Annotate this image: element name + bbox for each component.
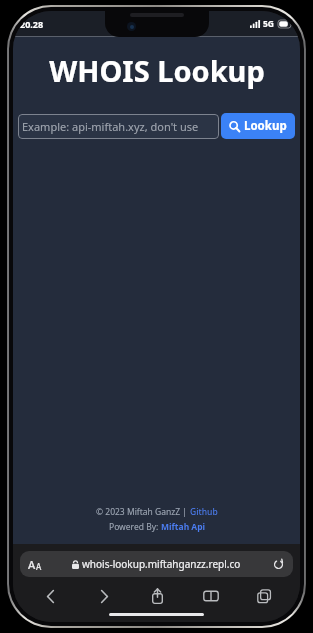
staticText: 5G [263,18,275,30]
button[interactable]: Lookup [221,113,295,139]
button[interactable]: Bookmarks [184,584,237,608]
button[interactable]: Page settings [20,551,293,577]
staticText: Lookup [244,118,287,134]
button[interactable]: Share [131,584,184,608]
button[interactable]: Tabs [237,584,290,608]
staticText: © 2023 Miftah GanzZ | [96,506,190,518]
staticText: A [28,557,36,572]
other: Page settings [28,557,42,572]
staticText: whois-lookup.miftahganzz.repl.co [82,557,241,571]
button[interactable]: Example: api-miftah.xyz, don't use [18,114,219,139]
button[interactable]: Miftah Api [161,521,206,533]
button[interactable]: Reload [272,558,285,571]
button[interactable]: Github [190,506,218,518]
staticText: Powered By: [109,521,161,533]
staticText: A [36,561,42,572]
button[interactable]: Forward [77,584,131,608]
button[interactable]: Back [23,584,77,608]
staticText: WHOIS Lookup [49,51,265,90]
staticText: Example: api-miftah.xyz, don't use [22,119,199,134]
staticText: 20.28 [20,18,44,30]
